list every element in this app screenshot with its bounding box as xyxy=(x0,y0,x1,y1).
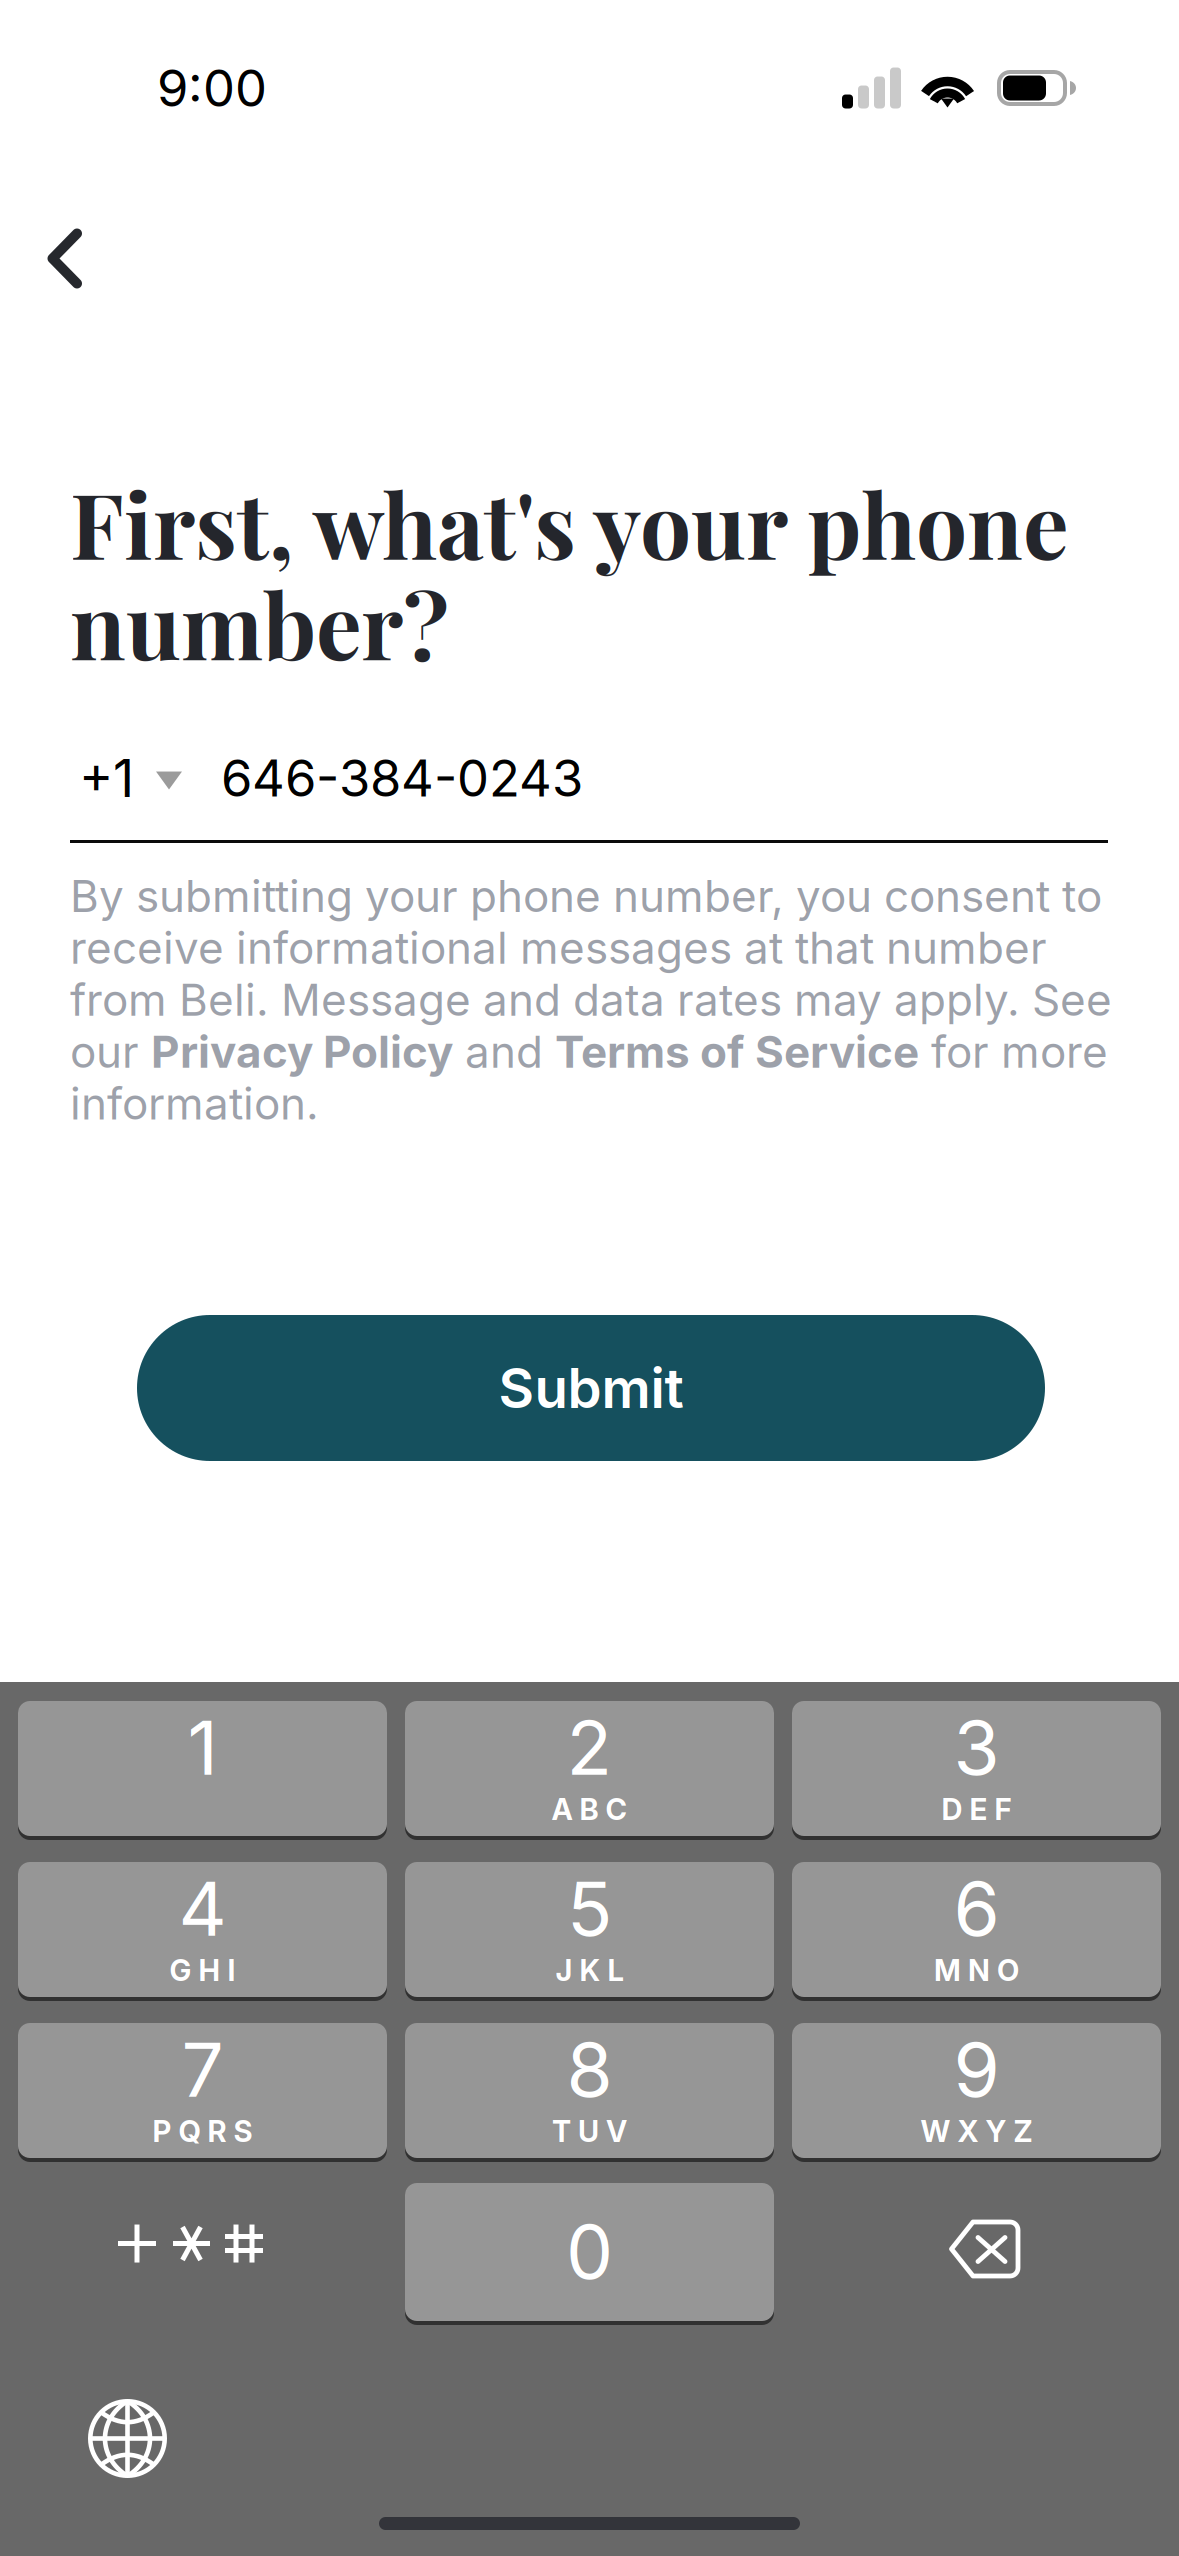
button[interactable]: 7 xyxy=(18,2023,387,2162)
staticText: 6 xyxy=(953,1876,999,1941)
button[interactable]: Country code +1 xyxy=(79,756,182,800)
staticText: First, what's your phone number? xyxy=(70,472,1069,673)
button[interactable]: 2 xyxy=(405,1701,774,1840)
staticText: 0 xyxy=(566,2219,613,2284)
button[interactable]: 1 xyxy=(18,1701,387,1840)
button[interactable]: 3 xyxy=(792,1701,1161,1840)
button[interactable]: Next keyboard xyxy=(18,2343,211,2506)
staticText: 2 xyxy=(566,1715,612,1780)
staticText: ABC xyxy=(551,1795,627,1823)
staticText: MNO xyxy=(934,1956,1019,1984)
staticText: +1 xyxy=(79,746,134,809)
button[interactable]: 6 xyxy=(792,1862,1161,2001)
staticText: By submitting your phone number, you con… xyxy=(70,870,1112,1129)
button[interactable]: Delete xyxy=(792,2186,1161,2321)
staticText: 4 xyxy=(178,1876,226,1941)
staticText: 8 xyxy=(566,2037,612,2102)
staticText: JKL xyxy=(555,1956,623,1984)
button[interactable]: 9 xyxy=(792,2023,1161,2162)
staticText: 9:00 xyxy=(157,57,267,119)
button[interactable]: 4 xyxy=(18,1862,387,2001)
staticText: GHI xyxy=(169,1956,235,1984)
staticText: PQRS xyxy=(152,2117,252,2145)
button[interactable]: 5 xyxy=(405,1862,774,2001)
staticText: 3 xyxy=(953,1715,999,1780)
staticText: WXYZ xyxy=(920,2117,1032,2145)
button[interactable]: 8 xyxy=(405,2023,774,2162)
staticText: Submit xyxy=(498,1355,683,1421)
button[interactable]: 0 xyxy=(405,2183,774,2325)
button[interactable]: Symbols xyxy=(18,2186,387,2321)
staticText: 9 xyxy=(953,2037,999,2102)
staticText: 5 xyxy=(567,1876,612,1941)
staticText: 7 xyxy=(181,2037,223,2102)
staticText: DEF xyxy=(941,1795,1011,1823)
button[interactable]: Back xyxy=(0,0,130,324)
staticText: TUV xyxy=(552,2117,627,2145)
button[interactable]: Submit xyxy=(137,1315,1045,1461)
staticText: 646-384-0243 xyxy=(221,747,583,809)
staticText: 1 xyxy=(187,1715,217,1780)
